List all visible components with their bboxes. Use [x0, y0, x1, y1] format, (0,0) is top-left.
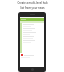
button[interactable]: App preview [18, 12, 46, 72]
button[interactable]: Create a multi-level hub [2, 1, 62, 10]
button[interactable] [20, 18, 44, 21]
button[interactable] [21, 54, 44, 56]
staticText: Create a multi-level hub [17, 1, 48, 5]
staticText: list from your news [20, 6, 45, 10]
